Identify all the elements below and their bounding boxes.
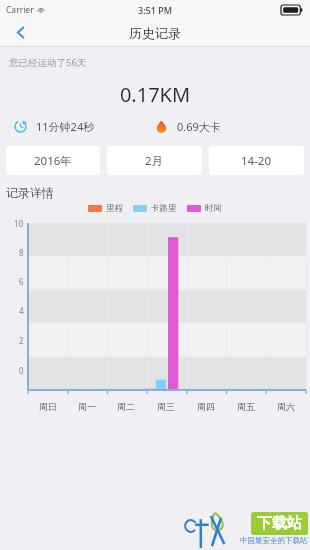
staticText: 周日 [39, 401, 57, 412]
staticText: 中国最安全的下载站 [240, 536, 308, 545]
staticText: Carrier [6, 4, 34, 16]
staticText: 周二 [117, 401, 135, 412]
staticText: 0.17KM [0, 81, 310, 108]
staticText: 下载站 [257, 514, 302, 533]
staticText: 您已经运动了56天 [9, 56, 87, 69]
staticText: 时间 [205, 203, 222, 214]
staticText: 3:51 PM [138, 4, 172, 16]
staticText: 0.69大卡 [177, 119, 221, 134]
staticText: 2 [19, 335, 24, 346]
staticText: 6 [19, 276, 24, 287]
staticText: 周五 [237, 401, 255, 412]
staticText: 里程 [106, 203, 123, 214]
staticText: 2016年 [34, 153, 72, 169]
staticText: 周四 [197, 401, 215, 412]
staticText: 11分钟24秒 [36, 119, 95, 134]
staticText: 4 [19, 305, 24, 316]
staticText: 10 [14, 218, 24, 229]
staticText: 2月 [145, 153, 164, 169]
staticText: 卡路里 [151, 203, 177, 214]
button[interactable]: 14-20 [209, 146, 304, 175]
staticText: 周一 [78, 401, 96, 412]
button[interactable]: Back [0, 19, 40, 46]
staticText: 14-20 [241, 153, 272, 169]
staticText: 周六 [277, 401, 295, 412]
staticText: 8 [19, 247, 24, 258]
button[interactable]: 2016年 [6, 146, 100, 175]
staticText: 历史记录 [129, 25, 181, 41]
button[interactable]: 2月 [107, 146, 202, 175]
staticText: 0 [19, 365, 24, 376]
staticText: 记录详情 [6, 185, 54, 200]
staticText: 周三 [157, 401, 175, 412]
